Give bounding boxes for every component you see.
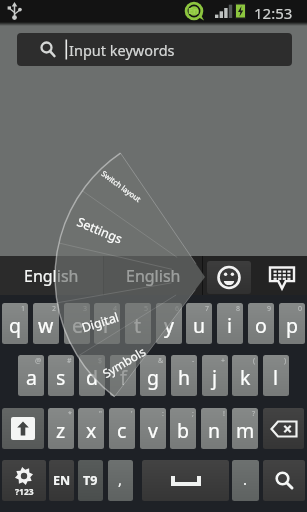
staticText: f — [120, 364, 127, 391]
staticText: 7 — [205, 304, 210, 314]
staticText: ! — [223, 409, 225, 419]
staticText: Switch layout — [99, 168, 143, 204]
staticText: @ — [35, 356, 42, 366]
button[interactable]: m — [232, 408, 258, 449]
staticText: r — [103, 312, 112, 339]
staticText: m — [236, 417, 255, 444]
staticText: 8 — [236, 304, 241, 314]
staticText: 1 — [21, 304, 26, 314]
button[interactable]: EN — [49, 460, 74, 501]
button[interactable]: Input keywords — [17, 33, 292, 66]
staticText: z — [56, 417, 66, 444]
staticText: 3 — [83, 304, 88, 314]
staticText: ; — [192, 409, 194, 419]
button[interactable]: e — [64, 303, 90, 344]
staticText: v — [148, 417, 158, 444]
staticText: Settings — [74, 213, 125, 248]
button[interactable]: h — [171, 355, 197, 396]
staticText: ' — [131, 409, 133, 419]
button[interactable]: r — [94, 303, 120, 344]
staticText: x — [86, 417, 97, 444]
button[interactable]: v — [140, 408, 166, 449]
button[interactable]: Digital — [49, 296, 151, 348]
staticText: b — [177, 417, 189, 444]
button[interactable]: y — [156, 303, 182, 344]
staticText: q — [9, 312, 21, 339]
button[interactable]: Emoji — [207, 261, 251, 294]
button[interactable]: k — [232, 355, 258, 396]
staticText: - — [192, 356, 195, 366]
button[interactable]: Symbols — [75, 327, 173, 397]
staticText: n — [208, 417, 221, 444]
staticText: * — [68, 409, 72, 419]
staticText: y — [164, 312, 174, 339]
button[interactable]: o — [248, 303, 274, 344]
button[interactable]: s — [48, 355, 74, 396]
button[interactable]: j — [202, 355, 228, 396]
button[interactable]: u — [186, 303, 212, 344]
button[interactable]: a — [18, 355, 44, 396]
staticText: w — [38, 312, 54, 339]
button[interactable]: Space — [142, 460, 229, 501]
staticText: u — [193, 312, 206, 339]
button[interactable]: Backspace — [263, 408, 304, 449]
staticText: c — [117, 417, 127, 444]
staticText: : — [162, 409, 164, 419]
staticText: T9 — [83, 472, 98, 489]
staticText: . — [243, 469, 248, 489]
staticText: 4 — [113, 304, 118, 314]
staticText: # — [67, 356, 72, 366]
button[interactable]: English — [104, 256, 202, 295]
staticText: 2 — [52, 304, 57, 314]
button[interactable]: t — [125, 303, 151, 344]
staticText: Digital — [79, 308, 122, 336]
button[interactable]: d — [79, 355, 105, 396]
staticText: e — [72, 312, 83, 339]
button[interactable]: q — [2, 303, 28, 344]
button[interactable]: . — [232, 460, 259, 501]
button[interactable]: f — [110, 355, 136, 396]
button[interactable]: p — [279, 303, 305, 344]
staticText: & — [158, 356, 164, 366]
button[interactable]: Shift — [2, 408, 44, 449]
staticText: a — [26, 364, 37, 391]
button[interactable]: Switch keyboard — [256, 261, 307, 294]
button[interactable]: English — [0, 256, 103, 295]
button[interactable]: i — [217, 303, 243, 344]
button[interactable]: Settings and symbols — [2, 460, 46, 501]
button[interactable]: b — [170, 408, 196, 449]
button[interactable]: g — [140, 355, 166, 396]
staticText: " — [99, 409, 102, 419]
button[interactable]: T9 — [78, 460, 103, 501]
button[interactable]: l — [263, 355, 289, 396]
staticText: d — [86, 364, 98, 391]
staticText: ? — [252, 409, 256, 419]
staticText: $ — [98, 356, 103, 366]
staticText: ( — [253, 356, 256, 366]
button[interactable]: w — [33, 303, 59, 344]
staticText: h — [178, 364, 191, 391]
staticText: En — [188, 4, 199, 16]
staticText: p — [286, 312, 298, 339]
staticText: + — [221, 356, 226, 366]
staticText: g — [147, 364, 159, 391]
staticText: 6 — [175, 304, 180, 314]
button[interactable]: z — [48, 408, 74, 449]
button[interactable]: Search — [263, 460, 305, 501]
button[interactable]: Settings — [50, 200, 150, 259]
staticText: English — [126, 265, 181, 287]
button[interactable]: Switch layout — [74, 147, 168, 224]
staticText: t — [134, 312, 142, 339]
button[interactable]: , — [108, 460, 133, 501]
staticText: 0 — [298, 304, 303, 314]
staticText: 12:53 — [254, 3, 293, 23]
button[interactable]: c — [109, 408, 135, 449]
staticText: % — [128, 356, 134, 366]
button[interactable]: n — [201, 408, 227, 449]
staticText: , — [118, 469, 123, 489]
staticText: English — [24, 265, 79, 287]
staticText: EN — [53, 472, 71, 489]
staticText: i — [227, 312, 233, 339]
button[interactable]: x — [78, 408, 104, 449]
staticText: 5 — [144, 304, 149, 314]
